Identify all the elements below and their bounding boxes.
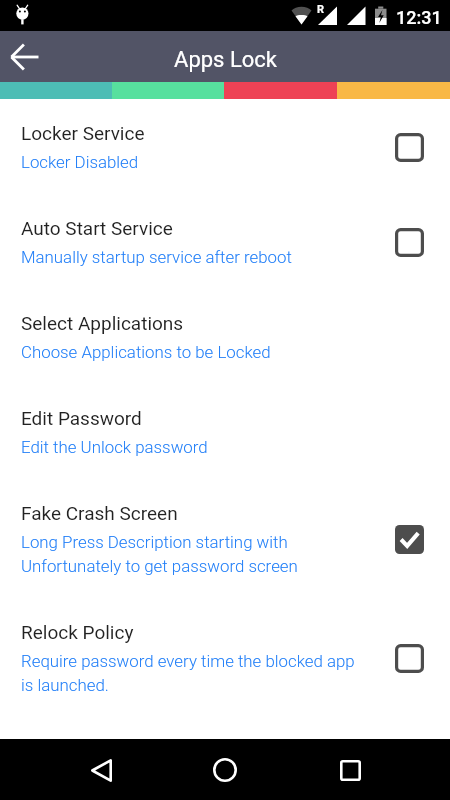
button[interactable]: Unchecked — [392, 130, 426, 164]
button[interactable]: Select Applications — [0, 289, 450, 384]
staticText: 12:31 — [396, 7, 442, 28]
staticText: Long Press Description starting with — [21, 532, 288, 552]
staticText: Locker Disabled — [21, 152, 139, 172]
button[interactable]: Unchecked — [392, 225, 426, 259]
button[interactable]: Fake Crash Screen — [0, 479, 450, 598]
button[interactable]: Back — [0, 33, 48, 81]
button[interactable]: Recents — [326, 746, 374, 794]
staticText: Auto Start Service — [21, 217, 173, 239]
staticText: R — [317, 3, 325, 16]
staticText: Locker Service — [21, 122, 145, 144]
staticText: Apps Lock — [174, 47, 277, 73]
staticText: Edit Password — [21, 407, 142, 429]
staticText: Relock Policy — [21, 621, 134, 643]
staticText: Unfortunately to get password screen — [21, 556, 298, 576]
button[interactable]: Relock Policy — [0, 598, 450, 717]
button[interactable]: Checked — [392, 522, 426, 556]
staticText: Choose Applications to be Locked — [21, 342, 271, 362]
button[interactable]: Edit Password — [0, 384, 450, 479]
staticText: Edit the Unlock password — [21, 437, 208, 457]
button[interactable]: Back — [77, 746, 125, 794]
staticText: Fake Crash Screen — [21, 502, 178, 524]
button[interactable]: Unchecked — [392, 641, 426, 675]
staticText: is launched. — [21, 675, 109, 695]
staticText: Manually startup service after reboot — [21, 247, 292, 267]
staticText: Require password every time the blocked … — [21, 651, 355, 671]
button[interactable]: Home — [201, 746, 249, 794]
staticText: Select Applications — [21, 312, 184, 334]
button[interactable]: Locker Service — [0, 99, 450, 194]
button[interactable]: Auto Start Service — [0, 194, 450, 289]
